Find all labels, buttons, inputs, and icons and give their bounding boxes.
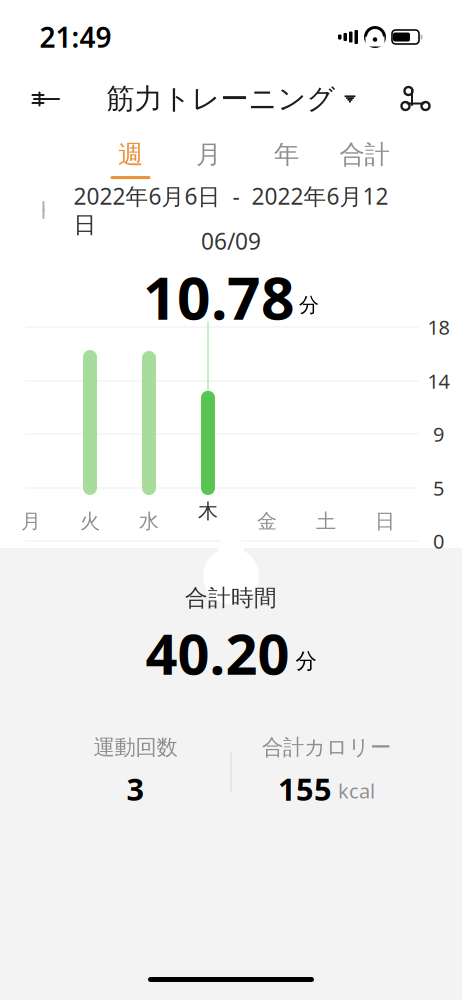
staticText: 火	[80, 509, 100, 534]
staticText: 土	[316, 509, 336, 534]
staticText: 5	[433, 475, 444, 501]
button[interactable]: 合計	[325, 133, 403, 185]
staticText: 筋力トレーニング	[106, 82, 335, 116]
staticText: 合計カロリー	[262, 734, 391, 760]
staticText: 3	[126, 768, 144, 809]
staticText: 155	[278, 768, 332, 809]
staticText: 合計	[339, 139, 389, 170]
staticText: 運動回数	[93, 734, 177, 760]
staticText: 9	[433, 421, 444, 447]
staticText: 0	[433, 528, 444, 554]
staticText: 合計時間	[185, 584, 277, 612]
staticText: 分	[299, 293, 319, 317]
staticText: 06/09	[201, 226, 261, 256]
button[interactable]: 筋力トレーニング	[100, 72, 361, 126]
staticText: 年	[274, 139, 299, 170]
button[interactable]: 共有	[388, 72, 442, 126]
staticText: 月	[21, 509, 41, 534]
staticText: 月	[196, 139, 221, 170]
staticText: 水	[139, 509, 159, 534]
button[interactable]: 戻る	[19, 72, 73, 126]
staticText: 40.20	[145, 616, 289, 690]
button[interactable]: 週	[91, 133, 169, 185]
button[interactable]: 前の週	[21, 190, 65, 230]
staticText: 日	[375, 509, 395, 534]
button[interactable]: 月	[169, 133, 247, 185]
staticText: 金	[257, 509, 277, 534]
staticText: 18	[427, 314, 449, 340]
staticText: 2022年6月6日 - 2022年6月12日	[73, 181, 388, 239]
staticText: 14	[427, 368, 449, 394]
staticText: 10.78	[143, 258, 295, 336]
staticText: kcal	[338, 777, 375, 804]
staticText: 木	[198, 499, 218, 524]
staticText: 分	[295, 648, 316, 674]
staticText: 21:49	[39, 18, 111, 56]
staticText: 週	[118, 139, 143, 170]
button[interactable]: 年	[247, 133, 325, 185]
